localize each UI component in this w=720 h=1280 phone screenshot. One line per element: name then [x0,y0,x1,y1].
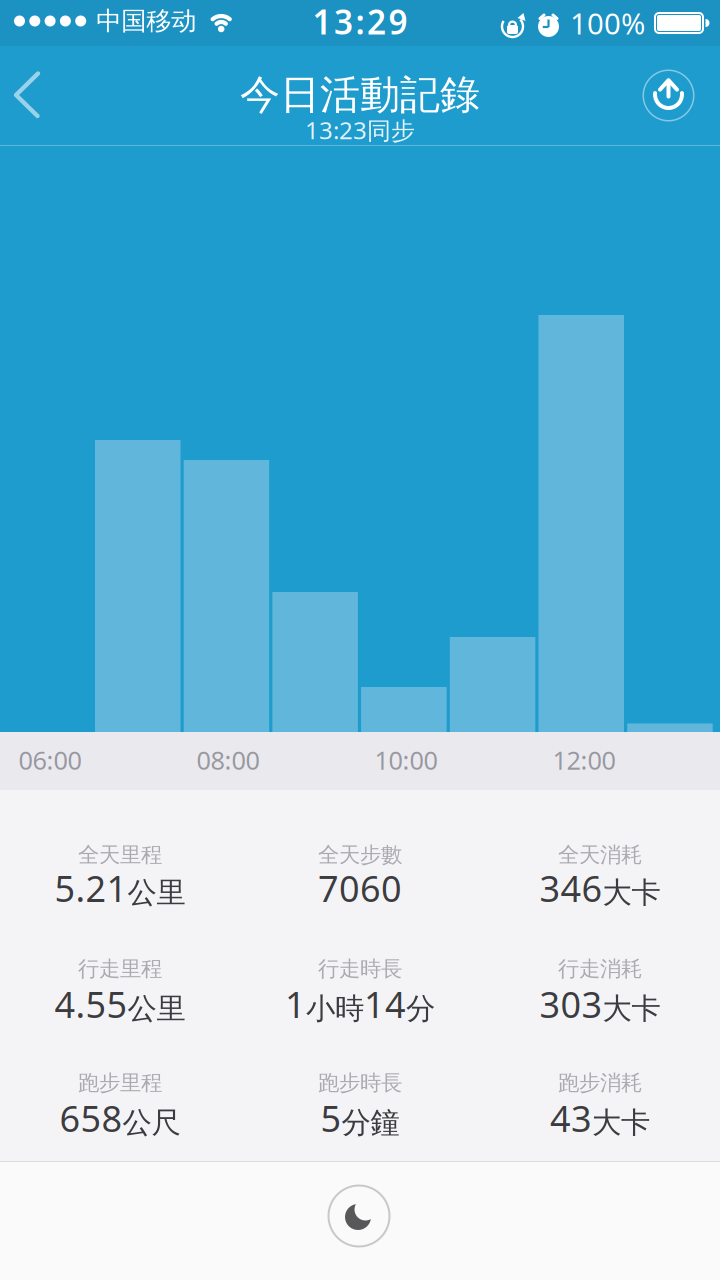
staticText: 行走時長 [318,956,402,982]
staticText: 5.21公里 [54,864,185,912]
staticText: 行走消耗 [558,956,642,982]
button[interactable] [327,1184,390,1247]
staticText: 跑步時長 [318,1070,402,1096]
staticText: 7060 [318,864,402,912]
staticText: 5分鐘 [320,1094,399,1142]
staticText: 全天步數 [318,842,402,868]
staticText: 4.55公里 [54,980,185,1028]
staticText: 10:00 [374,743,437,777]
staticText: 中国移动 [96,5,196,36]
button[interactable] [8,66,46,123]
staticText: 13:29 [312,0,407,44]
staticText: 12:00 [552,743,615,777]
staticText: 今日活動記錄 [240,70,480,119]
button[interactable] [642,69,694,121]
staticText: 100% [570,3,645,42]
staticText: 13:23同步 [305,114,415,146]
staticText: 行走里程 [78,956,162,982]
staticText: 全天消耗 [558,842,642,868]
staticText: 303大卡 [539,980,660,1028]
staticText: 全天里程 [78,842,162,868]
staticText: 跑步消耗 [558,1070,642,1096]
staticText: 346大卡 [539,864,660,912]
staticText: 1小時14分 [285,980,435,1028]
staticText: 43大卡 [550,1094,650,1142]
staticText: 06:00 [18,743,81,777]
staticText: 658公尺 [59,1094,180,1142]
staticText: 08:00 [196,743,259,777]
staticText: 跑步里程 [78,1070,162,1096]
